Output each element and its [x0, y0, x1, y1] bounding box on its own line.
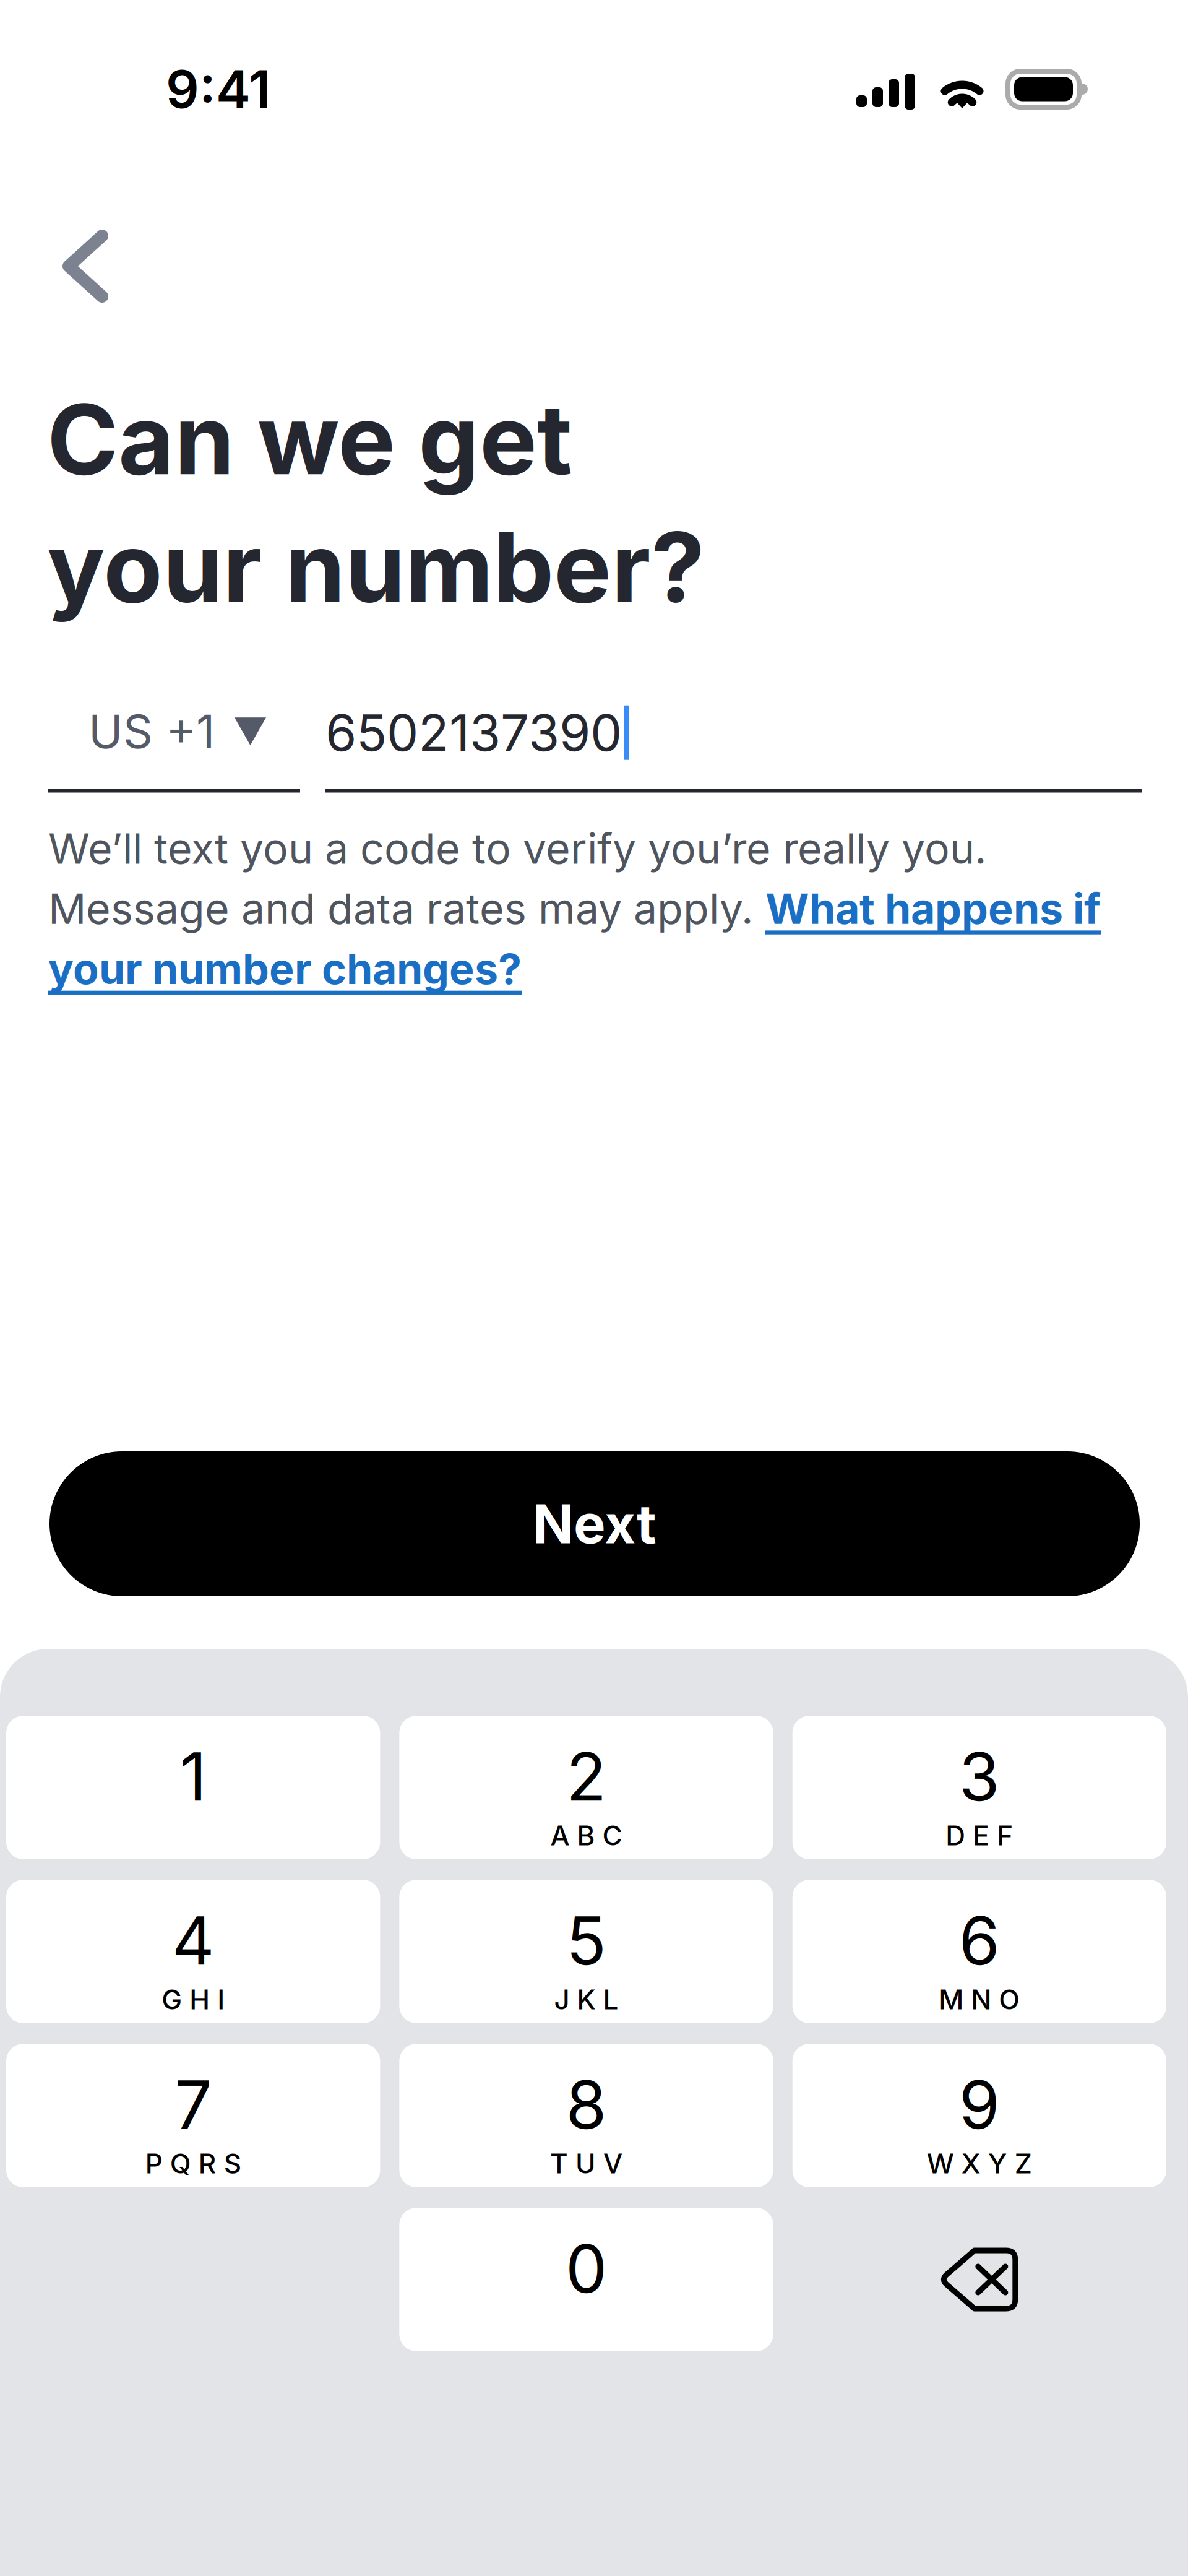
staticText: We’ll text you a code to verify you’re r…	[48, 823, 1101, 994]
button[interactable]: 7	[6, 2044, 380, 2187]
staticText: 1	[180, 1737, 206, 1817]
staticText: 4	[172, 1901, 215, 1981]
staticText: 6	[959, 1901, 1000, 1981]
staticText: 0	[566, 2229, 607, 2309]
staticText: 5	[566, 1901, 606, 1981]
staticText: Next	[533, 1491, 656, 1556]
staticText: 6502137390	[325, 702, 622, 763]
button[interactable]: 5	[399, 1880, 773, 2023]
button[interactable]: 0	[399, 2208, 773, 2351]
staticText: W X Y Z	[927, 2147, 1032, 2180]
staticText: 9:41	[166, 58, 271, 121]
button[interactable]: 9	[792, 2044, 1166, 2187]
staticText: Can we get your number?	[47, 381, 705, 625]
staticText: D E F	[946, 1819, 1013, 1852]
staticText: G H I	[162, 1983, 225, 2016]
staticText: T U V	[550, 2147, 622, 2180]
staticText: 3	[959, 1737, 1000, 1817]
button[interactable]: 2	[399, 1716, 773, 1859]
button[interactable]: 6	[792, 1880, 1166, 2023]
button[interactable]: 8	[399, 2044, 773, 2187]
button[interactable]: US +1	[48, 702, 300, 793]
staticText: P Q R S	[145, 2147, 241, 2180]
staticText: 2	[566, 1737, 606, 1817]
staticText: 8	[566, 2065, 607, 2145]
button[interactable]: 4	[6, 1880, 380, 2023]
button[interactable]: Back	[0, 207, 142, 325]
staticText: J K L	[554, 1983, 618, 2016]
staticText: 9	[959, 2065, 1000, 2145]
staticText: A B C	[550, 1819, 622, 1852]
staticText: US +1	[88, 703, 215, 759]
staticText: M N O	[939, 1983, 1020, 2016]
button[interactable]: 3	[792, 1716, 1166, 1859]
button[interactable]: Next	[49, 1451, 1140, 1596]
staticText: 7	[175, 2065, 212, 2145]
button[interactable]: 1	[6, 1716, 380, 1859]
button[interactable]: Delete	[792, 2208, 1166, 2351]
